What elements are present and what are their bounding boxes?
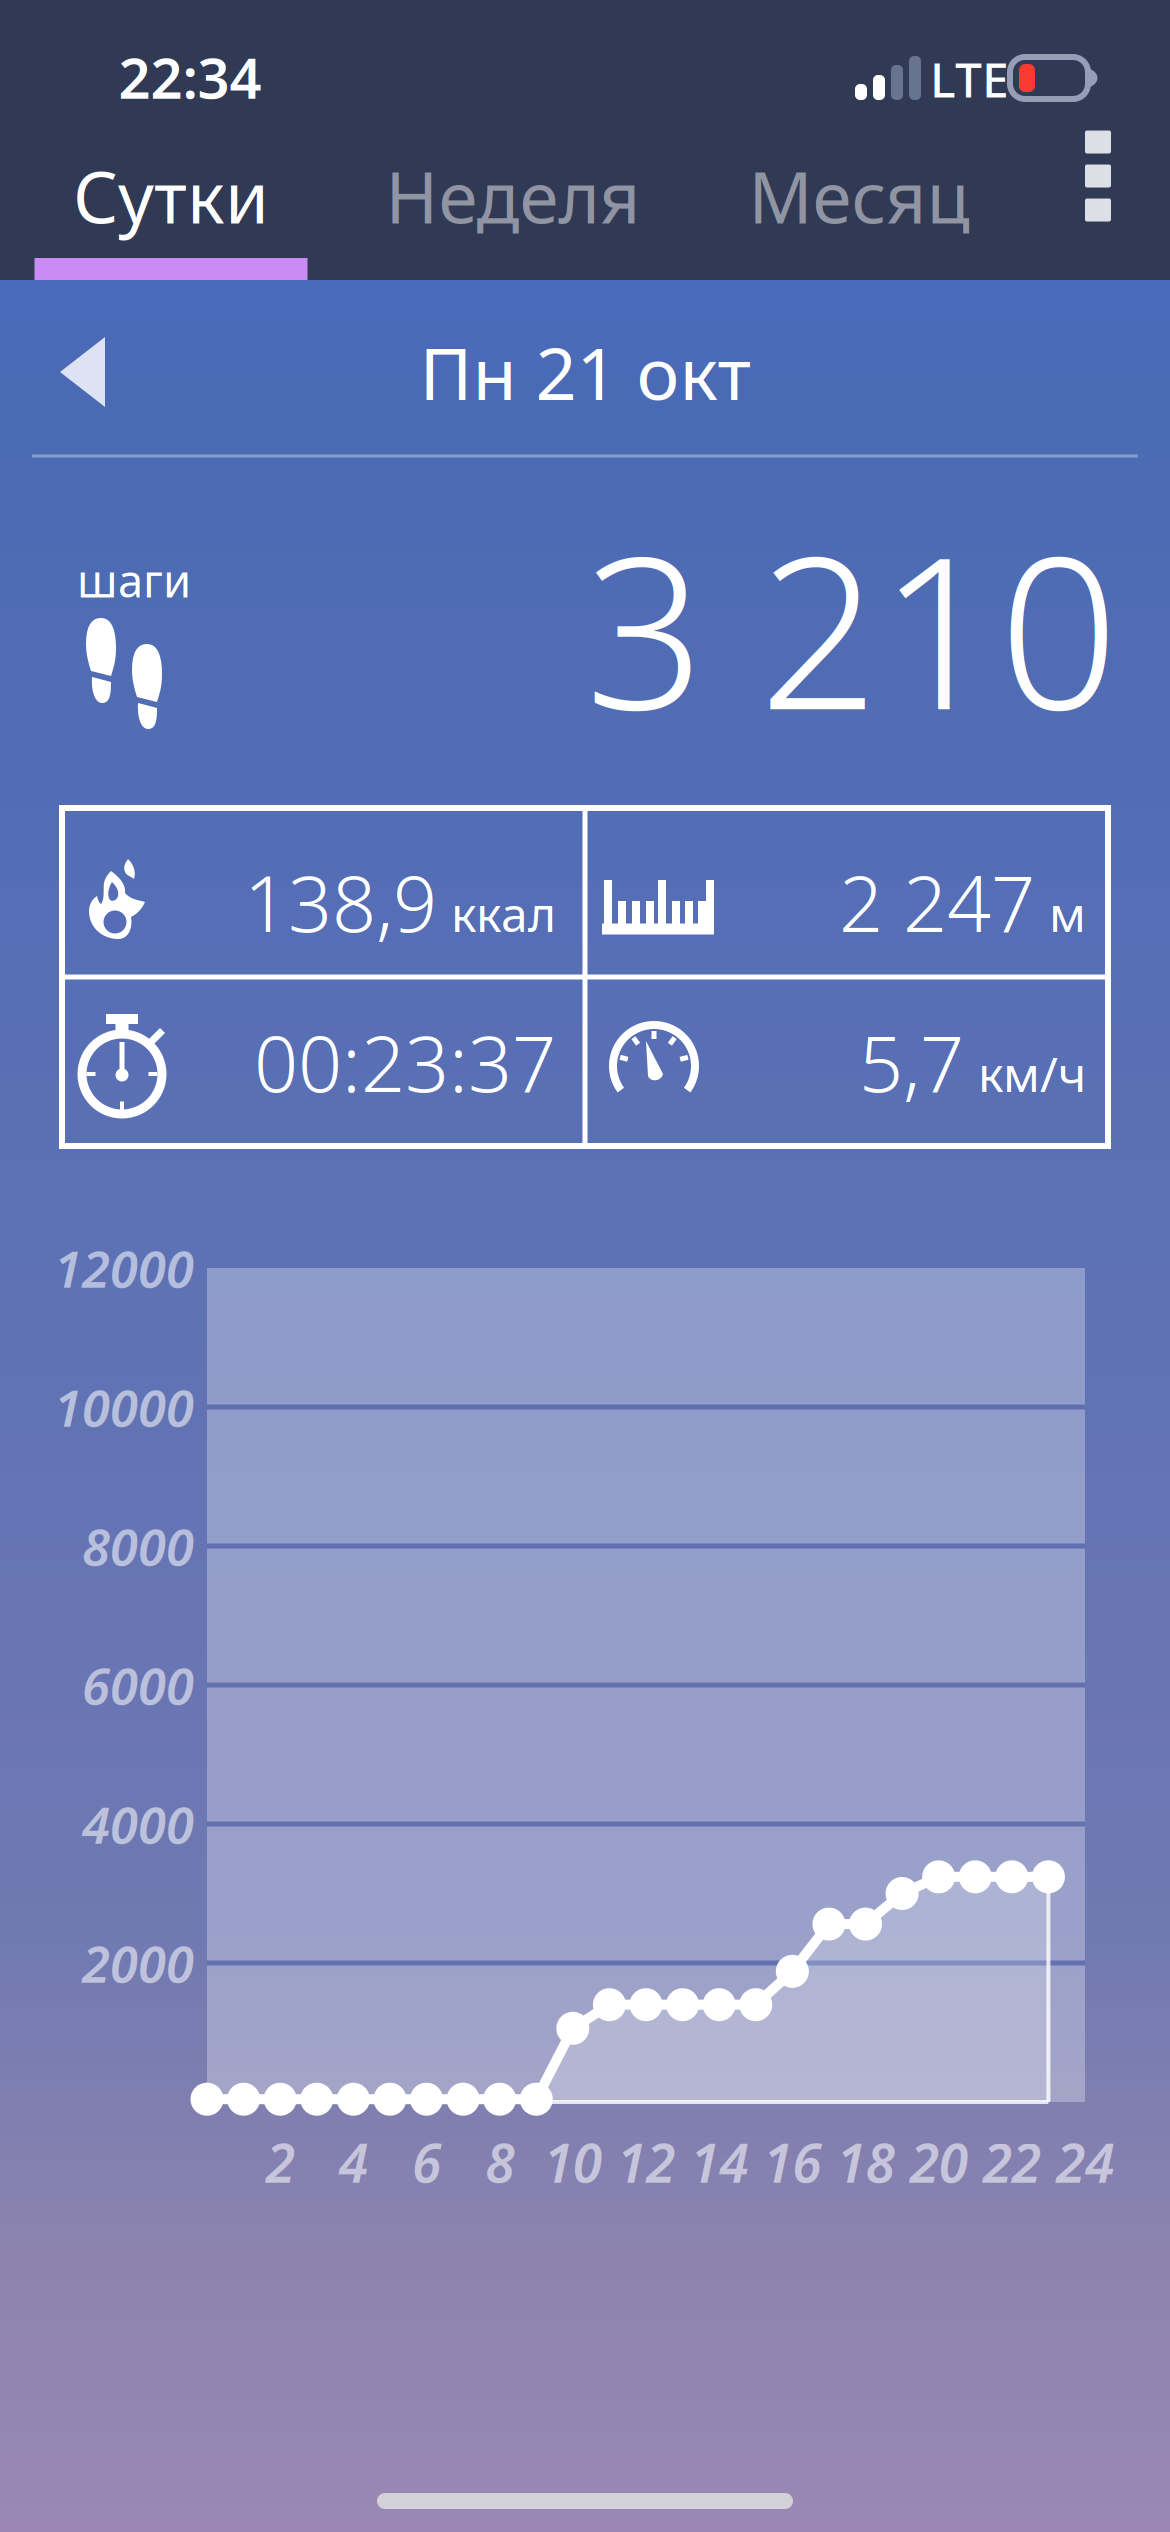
- staticText: 12000: [54, 1234, 194, 1302]
- button[interactable]: Неделя: [363, 133, 663, 259]
- staticText: 2000: [82, 1929, 194, 1997]
- staticText: 3 210: [585, 489, 1119, 767]
- staticText: ккал: [451, 881, 556, 945]
- staticText: 8000: [82, 1512, 194, 1580]
- button[interactable]: Месяц: [719, 133, 999, 259]
- staticText: 22:34: [118, 40, 261, 114]
- staticText: Месяц: [748, 149, 969, 243]
- staticText: 4000: [82, 1790, 194, 1858]
- staticText: 24: [1056, 2127, 1114, 2197]
- staticText: LTE: [930, 47, 1009, 111]
- staticText: Неделя: [385, 149, 640, 243]
- staticText: Сутки: [73, 149, 269, 243]
- button[interactable]: More options: [1048, 111, 1148, 241]
- staticText: 22: [983, 2127, 1041, 2197]
- staticText: 20: [910, 2127, 968, 2197]
- staticText: 18: [836, 2127, 894, 2197]
- staticText: 12: [617, 2127, 675, 2197]
- button[interactable]: Previous day: [30, 292, 146, 452]
- staticText: 10000: [54, 1373, 194, 1441]
- staticText: 6000: [82, 1651, 194, 1719]
- staticText: км/ч: [978, 1041, 1086, 1105]
- staticText: 2 247: [839, 851, 1035, 953]
- staticText: 10: [544, 2127, 602, 2197]
- staticText: 5,7: [859, 1011, 964, 1113]
- staticText: шаги: [77, 550, 191, 610]
- button[interactable]: Сутки: [35, 133, 307, 259]
- staticText: 6: [412, 2127, 441, 2197]
- staticText: 8: [485, 2127, 514, 2197]
- staticText: м: [1049, 881, 1086, 945]
- staticText: 4: [339, 2127, 368, 2197]
- staticText: 2: [266, 2127, 295, 2197]
- staticText: Пн 21 окт: [419, 324, 750, 420]
- staticText: 14: [690, 2127, 748, 2197]
- staticText: 138,9: [244, 851, 437, 953]
- staticText: 00:23:37: [254, 1011, 556, 1113]
- staticText: 16: [763, 2127, 821, 2197]
